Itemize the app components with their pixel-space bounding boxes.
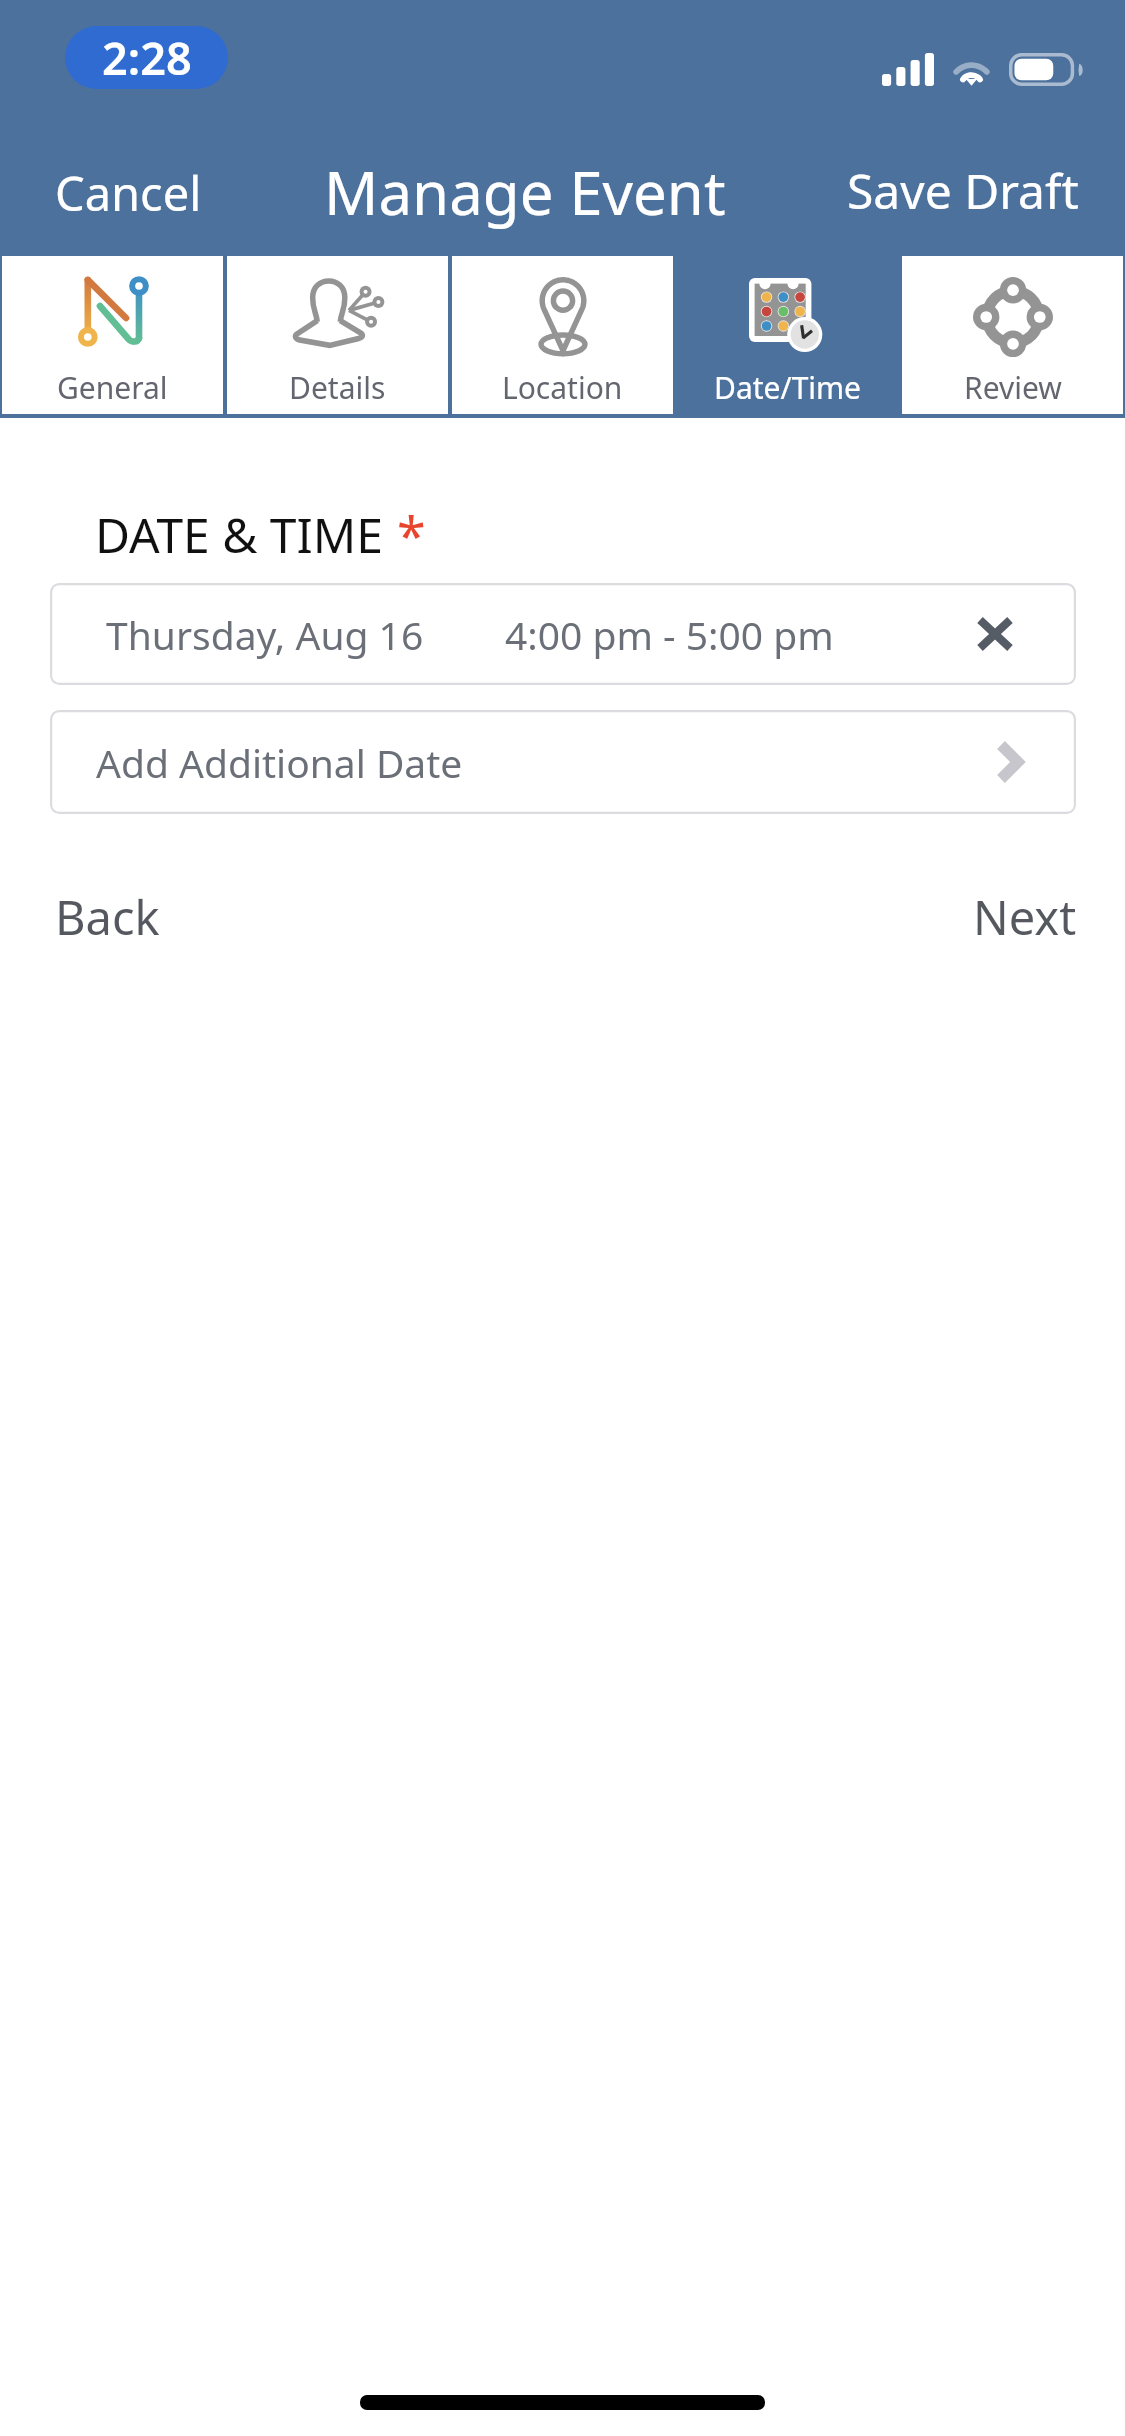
staticText: Save Draft bbox=[847, 158, 1079, 223]
staticText: Review bbox=[964, 367, 1062, 408]
staticText: Location bbox=[502, 367, 623, 408]
button[interactable]: Add Additional Date bbox=[50, 710, 1076, 814]
staticText: Next bbox=[973, 885, 1077, 949]
staticText: Cancel bbox=[55, 161, 202, 225]
button[interactable]: Next bbox=[943, 871, 1107, 963]
button[interactable]: Date/Time bbox=[677, 256, 898, 414]
button[interactable]: Save Draft bbox=[817, 150, 1109, 231]
staticText: Back bbox=[55, 885, 160, 949]
button[interactable]: Thursday, Aug 16 bbox=[50, 583, 1076, 685]
staticText: Date/Time bbox=[714, 367, 862, 408]
button[interactable]: Cancel bbox=[25, 153, 232, 233]
staticText: Thursday, Aug 16 bbox=[106, 608, 424, 661]
button[interactable]: General bbox=[2, 256, 223, 414]
button[interactable]: Review bbox=[902, 256, 1123, 414]
other: Signal, Wi-Fi and battery status bbox=[882, 44, 1082, 88]
button[interactable]: Back bbox=[25, 871, 190, 963]
staticText: Add Additional Date bbox=[96, 736, 463, 789]
staticText: 2:28 bbox=[102, 27, 192, 88]
staticText: Details bbox=[289, 367, 386, 408]
button[interactable]: Remove date bbox=[953, 592, 1037, 676]
staticText: 4:00 pm - 5:00 pm bbox=[505, 608, 834, 661]
staticText: DATE & TIME bbox=[95, 502, 384, 567]
button[interactable]: Details bbox=[227, 256, 448, 414]
staticText: * bbox=[397, 499, 426, 570]
staticText: General bbox=[57, 367, 168, 408]
staticText: Manage Event bbox=[324, 151, 726, 233]
button[interactable]: Location bbox=[452, 256, 673, 414]
